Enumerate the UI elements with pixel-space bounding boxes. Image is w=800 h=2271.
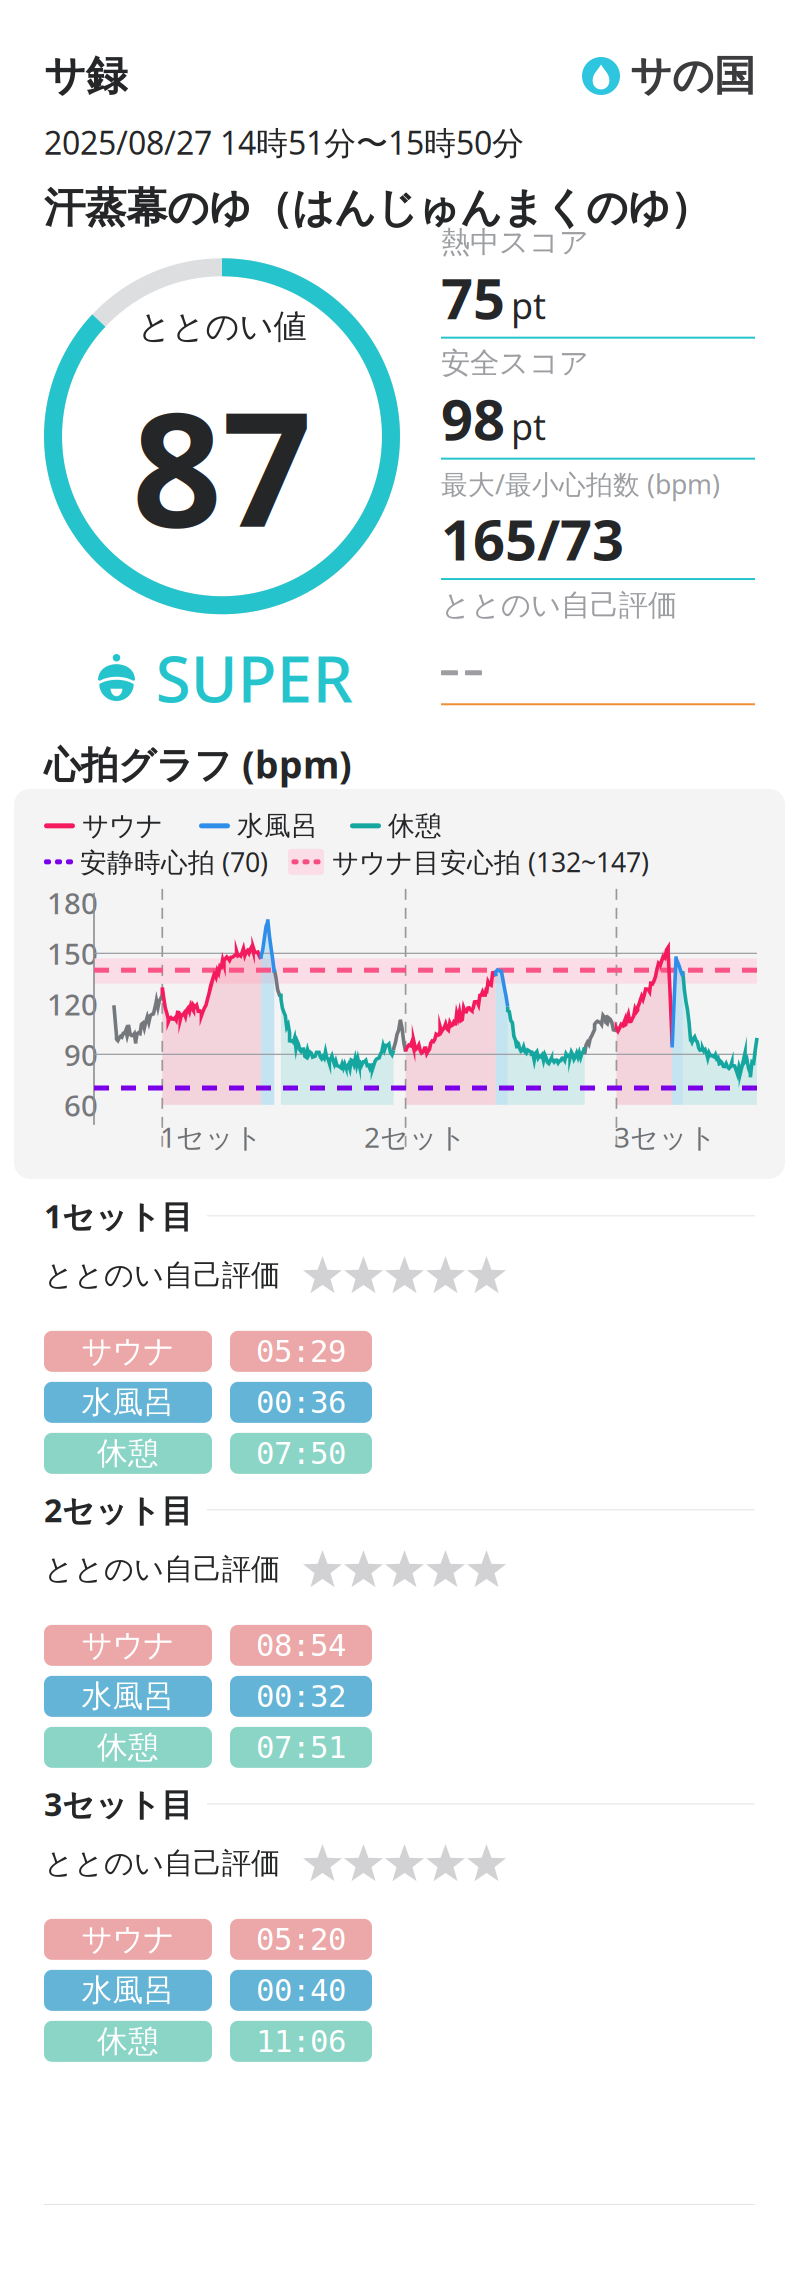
staticText: サ録 xyxy=(44,51,127,101)
staticText: 98 xyxy=(441,381,505,456)
staticText: 165/73 xyxy=(441,502,624,576)
staticText: 3セット目 xyxy=(44,1783,193,1825)
staticText: サの国 xyxy=(630,51,755,101)
staticText: 水風呂 xyxy=(81,1971,174,2009)
staticText: ととのい自己評価 xyxy=(441,587,677,623)
staticText: 2セット xyxy=(364,1118,467,1155)
staticText: 00:32 xyxy=(256,1679,346,1714)
staticText: 2セット目 xyxy=(44,1489,193,1531)
staticText: 心拍グラフ (bpm) xyxy=(44,739,352,789)
staticText: 00:40 xyxy=(256,1973,346,2008)
staticText: 熱中スコア xyxy=(441,224,589,260)
staticText: 87 xyxy=(132,361,312,570)
staticText: 120 xyxy=(47,985,98,1024)
staticText: 水風呂 xyxy=(237,809,318,842)
staticText: ととのい自己評価 xyxy=(44,1257,280,1293)
staticText: ととのい自己評価 xyxy=(44,1845,280,1881)
staticText: 60 xyxy=(64,1086,98,1125)
staticText: 水風呂 xyxy=(81,1383,174,1421)
staticText: SUPER xyxy=(155,635,352,720)
staticText: 汗蒸幕のゆ（はんじゅんまくのゆ） xyxy=(44,182,711,233)
staticText: 07:50 xyxy=(256,1436,346,1471)
staticText: 3セット xyxy=(614,1118,717,1155)
staticText: 150 xyxy=(47,934,98,973)
staticText: pt xyxy=(511,402,546,450)
staticText: 休憩 xyxy=(97,1728,159,1766)
staticText: ととのい値 xyxy=(137,306,306,347)
staticText: サウナ目安心拍 (132~147) xyxy=(332,844,649,879)
staticText: 00:36 xyxy=(256,1385,346,1420)
staticText: 08:54 xyxy=(256,1628,346,1663)
staticText: 180 xyxy=(47,883,98,922)
staticText: 75 xyxy=(441,260,505,335)
staticText: 最大/最小心拍数 (bpm) xyxy=(441,466,720,502)
staticText: 1セット目 xyxy=(44,1195,193,1237)
staticText: 90 xyxy=(64,1035,98,1074)
staticText: pt xyxy=(511,281,546,329)
button[interactable]: サの国 xyxy=(582,51,755,101)
staticText: 水風呂 xyxy=(81,1677,174,1715)
staticText: 05:29 xyxy=(256,1334,346,1369)
staticText: 安全スコア xyxy=(441,345,589,381)
staticText: 05:20 xyxy=(256,1922,346,1957)
staticText: 休憩 xyxy=(388,809,442,842)
staticText: サウナ xyxy=(81,1332,174,1370)
staticText: 安静時心拍 (70) xyxy=(80,844,268,879)
staticText: サウナ xyxy=(81,1626,174,1664)
staticText: 2025/08/27 14時51分〜15時50分 xyxy=(44,121,524,163)
staticText: 休憩 xyxy=(97,1434,159,1472)
staticText: 1セット xyxy=(160,1118,263,1155)
staticText: サウナ xyxy=(82,809,163,842)
staticText: 11:06 xyxy=(256,2024,346,2059)
staticText: 休憩 xyxy=(97,2022,159,2060)
staticText: ととのい自己評価 xyxy=(44,1551,280,1587)
staticText: 07:51 xyxy=(256,1730,346,1765)
staticText: サウナ xyxy=(81,1920,174,1958)
